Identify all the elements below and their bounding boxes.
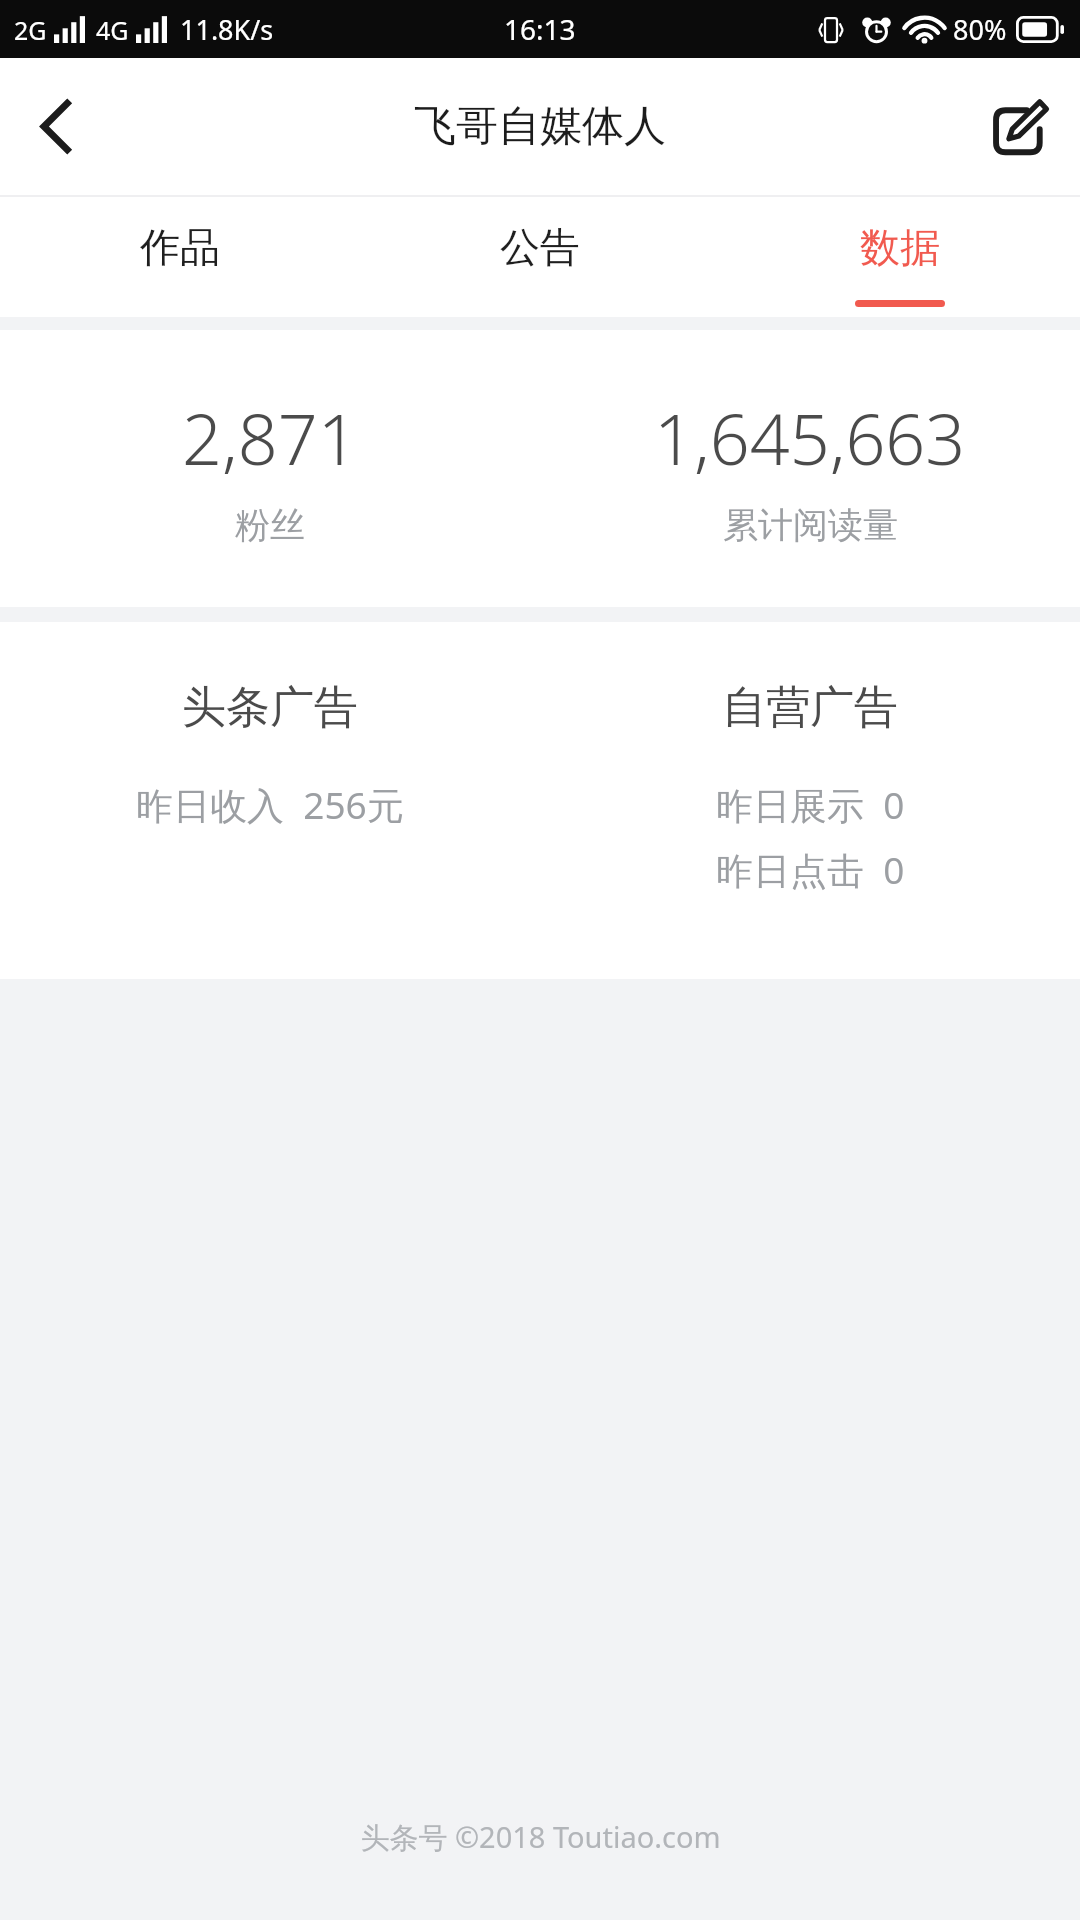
staticText: 4G xyxy=(96,13,129,47)
staticText: 昨日点击 0 xyxy=(716,844,905,895)
staticText: 80% xyxy=(953,11,1007,48)
staticText: 2G xyxy=(14,13,47,47)
button[interactable]: 头条广告 xyxy=(0,622,540,979)
button[interactable]: 作品 xyxy=(0,197,360,317)
staticText: 数据 xyxy=(860,222,940,272)
staticText: 2,871 xyxy=(182,390,358,485)
button[interactable]: 2,871 xyxy=(0,330,540,607)
button[interactable]: 自营广告 xyxy=(540,622,1080,979)
button[interactable]: Back xyxy=(0,58,112,195)
button[interactable]: 数据 xyxy=(720,197,1080,317)
staticText: 作品 xyxy=(140,222,220,272)
button[interactable]: Edit xyxy=(958,58,1080,195)
staticText: 粉丝 xyxy=(235,503,305,547)
staticText: 头条号 ©2018 Toutiao.com xyxy=(360,1817,721,1857)
staticText: 累计阅读量 xyxy=(723,503,898,547)
staticText: 自营广告 xyxy=(722,680,898,735)
staticText: 公告 xyxy=(500,222,580,272)
staticText: 昨日展示 0 xyxy=(716,779,905,830)
staticText: 飞哥自媒体人 xyxy=(414,100,666,153)
staticText: 16:13 xyxy=(504,10,576,48)
button[interactable]: 1,645,663 xyxy=(540,330,1080,607)
staticText: 昨日收入 256元 xyxy=(136,779,404,830)
staticText: 头条广告 xyxy=(182,680,358,735)
staticText: 1,645,663 xyxy=(654,390,966,485)
button[interactable]: 公告 xyxy=(360,197,720,317)
staticText: 11.8K/s xyxy=(180,11,274,48)
